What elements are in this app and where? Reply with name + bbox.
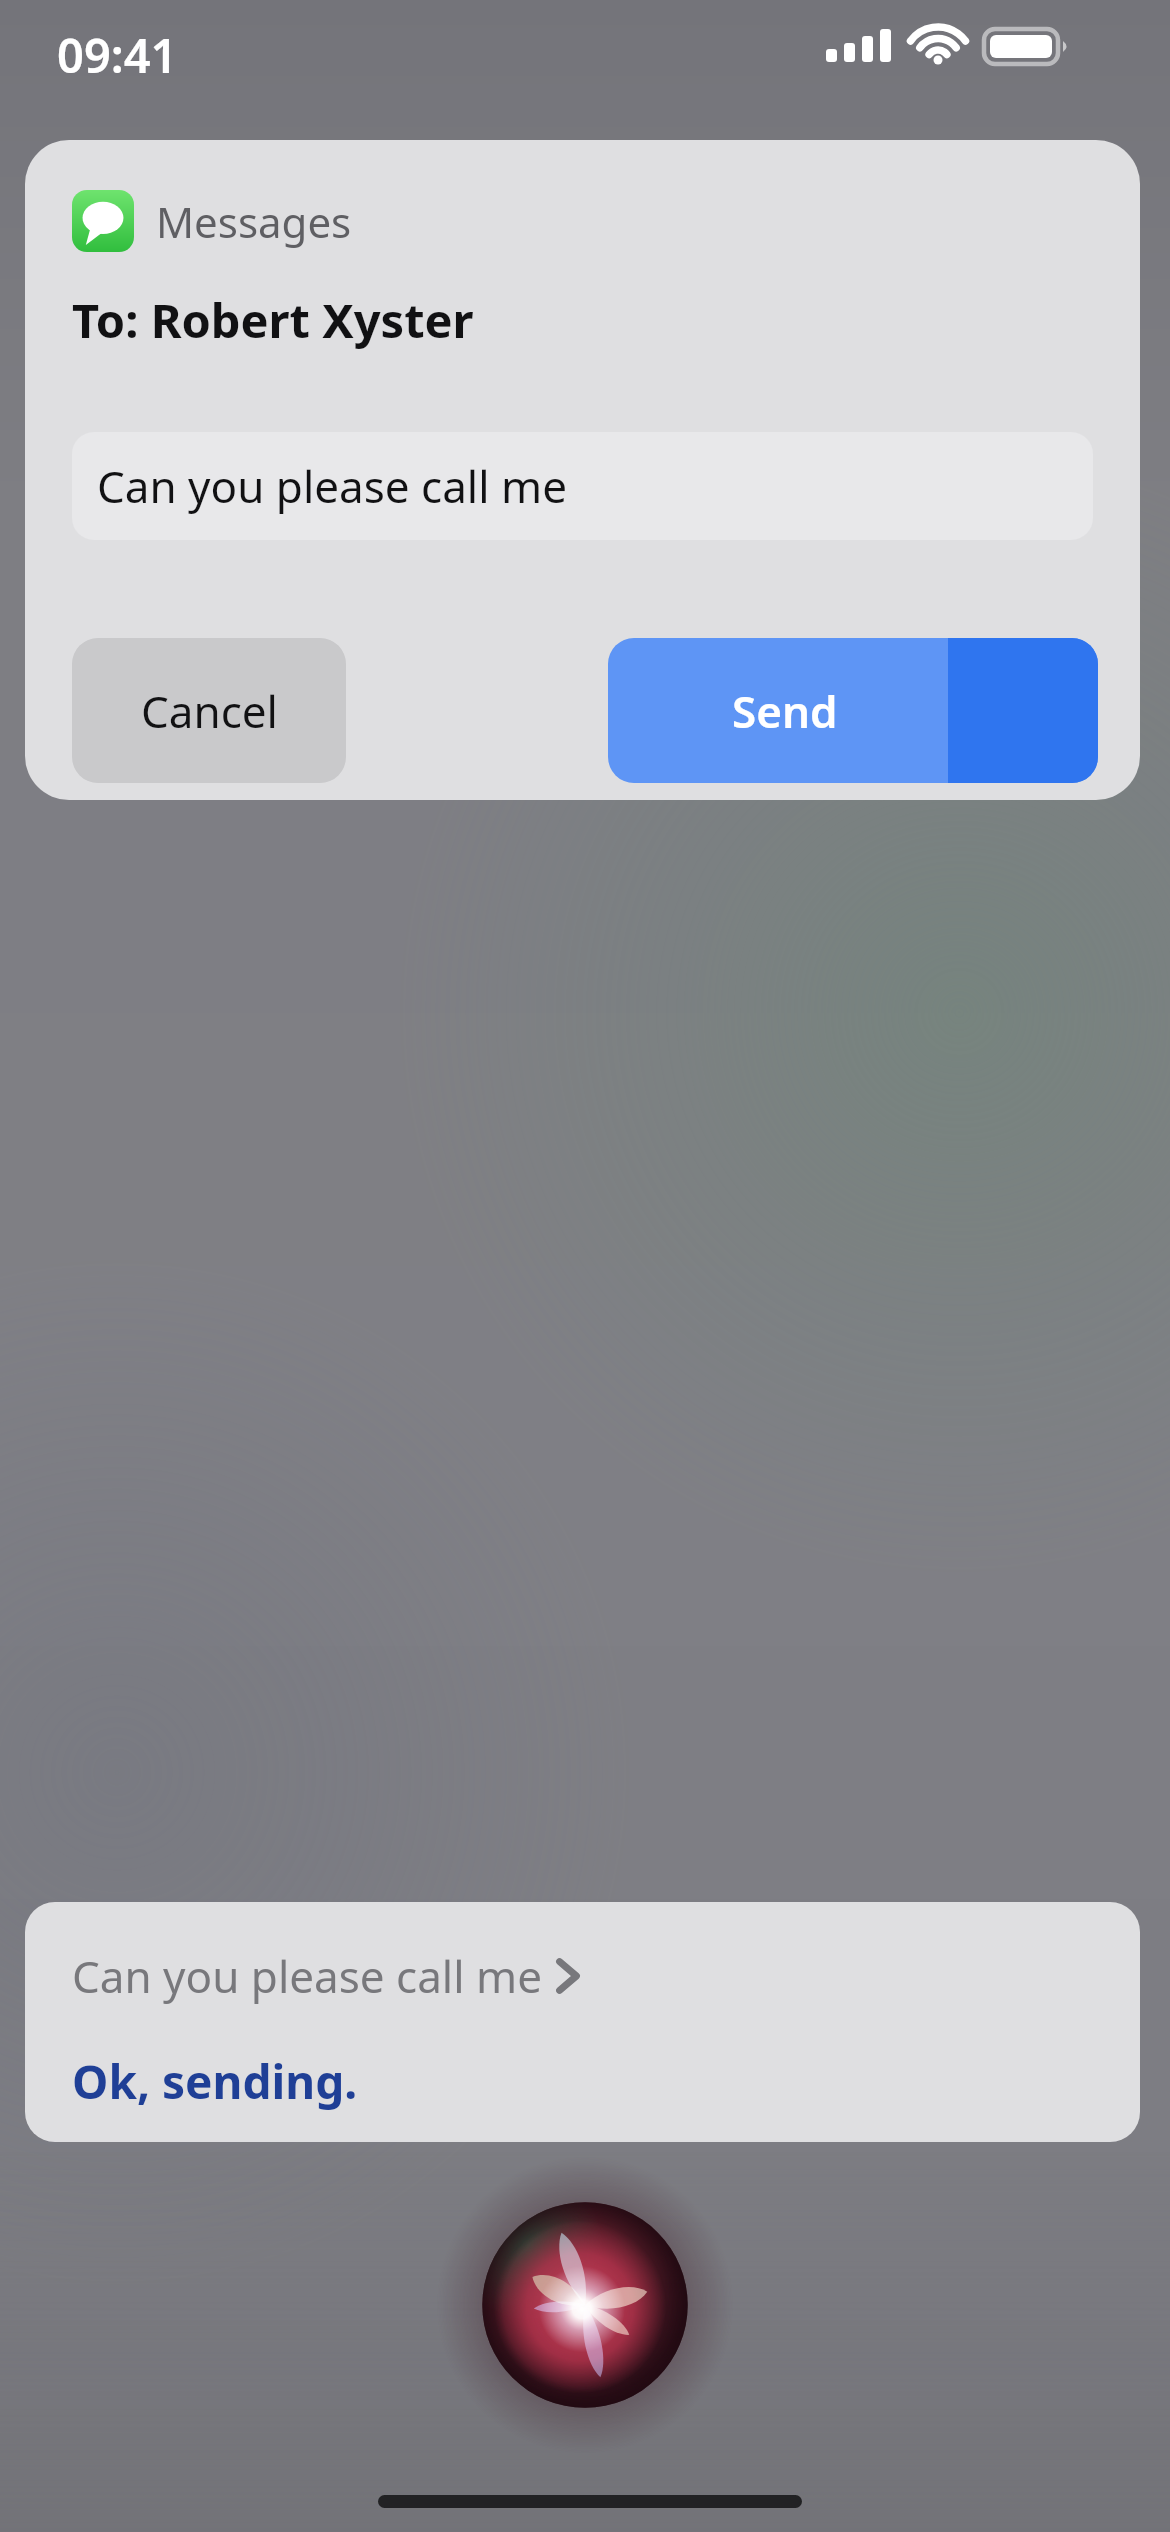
staticText: Messages	[156, 193, 352, 250]
staticText: Cancel	[141, 681, 278, 741]
staticText: Ok, sending.	[72, 2050, 358, 2113]
staticText: Can you please call me	[72, 1946, 542, 2006]
button[interactable]: Siri	[455, 2175, 715, 2435]
staticText: Can you please call me	[97, 456, 567, 516]
staticText: 09:41	[57, 23, 178, 87]
staticText: To: Robert Xyster	[72, 288, 474, 352]
button[interactable]: Cancel	[72, 638, 346, 783]
button[interactable]: Can you please call me	[72, 432, 1093, 540]
button[interactable]: Send	[608, 638, 1098, 783]
button[interactable]: Messages	[72, 190, 352, 252]
button[interactable]: Can you please call me	[25, 1902, 1140, 2142]
staticText: Send	[732, 681, 838, 741]
